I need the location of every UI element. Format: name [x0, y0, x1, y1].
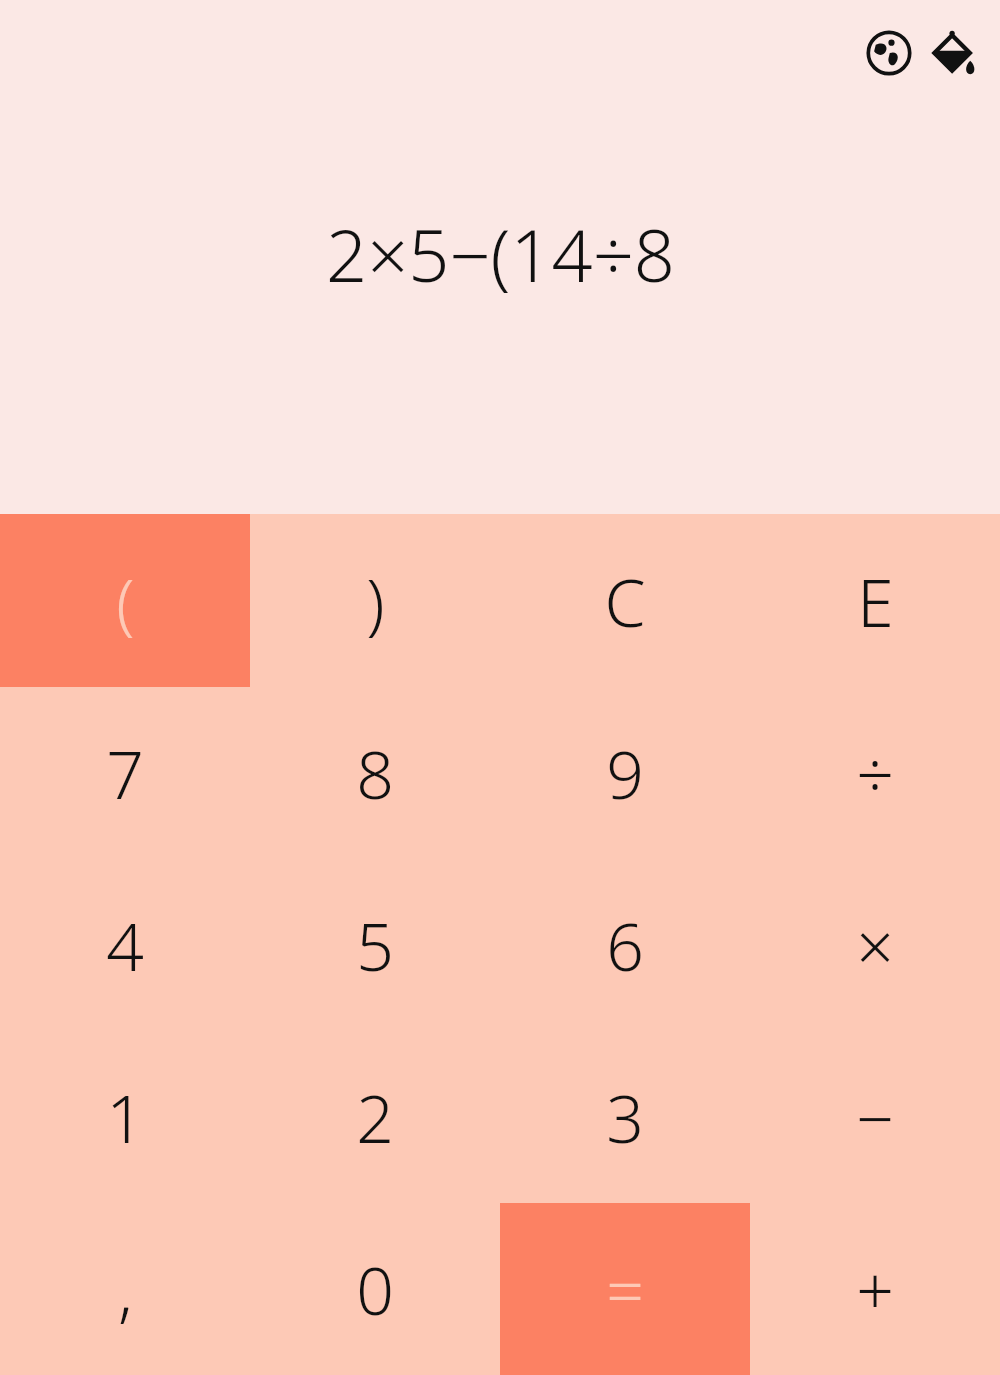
button[interactable]: 5 [250, 859, 500, 1031]
staticText: 7 [106, 728, 144, 818]
staticText: 1 [106, 1072, 144, 1162]
button[interactable]: 9 [500, 687, 750, 859]
staticText: 9 [606, 728, 644, 818]
button[interactable]: Language [858, 22, 920, 84]
button[interactable]: × [750, 859, 1000, 1031]
button[interactable]: − [750, 1031, 1000, 1203]
staticText: 5 [356, 900, 394, 990]
button[interactable]: 8 [250, 687, 500, 859]
staticText: 6 [606, 900, 644, 990]
staticText: , [118, 1244, 133, 1334]
staticText: 8 [356, 728, 394, 818]
button[interactable]: 6 [500, 859, 750, 1031]
staticText: 0 [356, 1244, 394, 1334]
staticText: = [606, 1244, 644, 1334]
button[interactable]: ( [0, 514, 250, 687]
staticText: E [857, 556, 894, 646]
staticText: ) [366, 556, 385, 646]
button[interactable]: 7 [0, 687, 250, 859]
staticText: + [856, 1244, 894, 1334]
staticText: − [856, 1072, 894, 1162]
button[interactable]: 4 [0, 859, 250, 1031]
button[interactable]: Theme [924, 22, 986, 84]
button[interactable]: + [750, 1203, 1000, 1375]
button[interactable]: 0 [250, 1203, 500, 1375]
button[interactable]: = [500, 1203, 750, 1375]
button[interactable]: C [500, 514, 750, 687]
staticText: × [856, 900, 894, 990]
button[interactable]: ) [250, 514, 500, 687]
button[interactable]: 1 [0, 1031, 250, 1203]
staticText: ÷ [856, 728, 894, 818]
staticText: 2 [356, 1072, 394, 1162]
staticText: 4 [106, 900, 144, 990]
button[interactable]: , [0, 1203, 250, 1375]
staticText: 3 [606, 1072, 644, 1162]
staticText: C [604, 556, 646, 646]
staticText: ( [116, 556, 135, 646]
button[interactable]: E [750, 514, 1000, 687]
button[interactable]: ÷ [750, 687, 1000, 859]
staticText: 2×5−(14÷8 [326, 205, 675, 303]
button[interactable]: 3 [500, 1031, 750, 1203]
button[interactable]: 2 [250, 1031, 500, 1203]
